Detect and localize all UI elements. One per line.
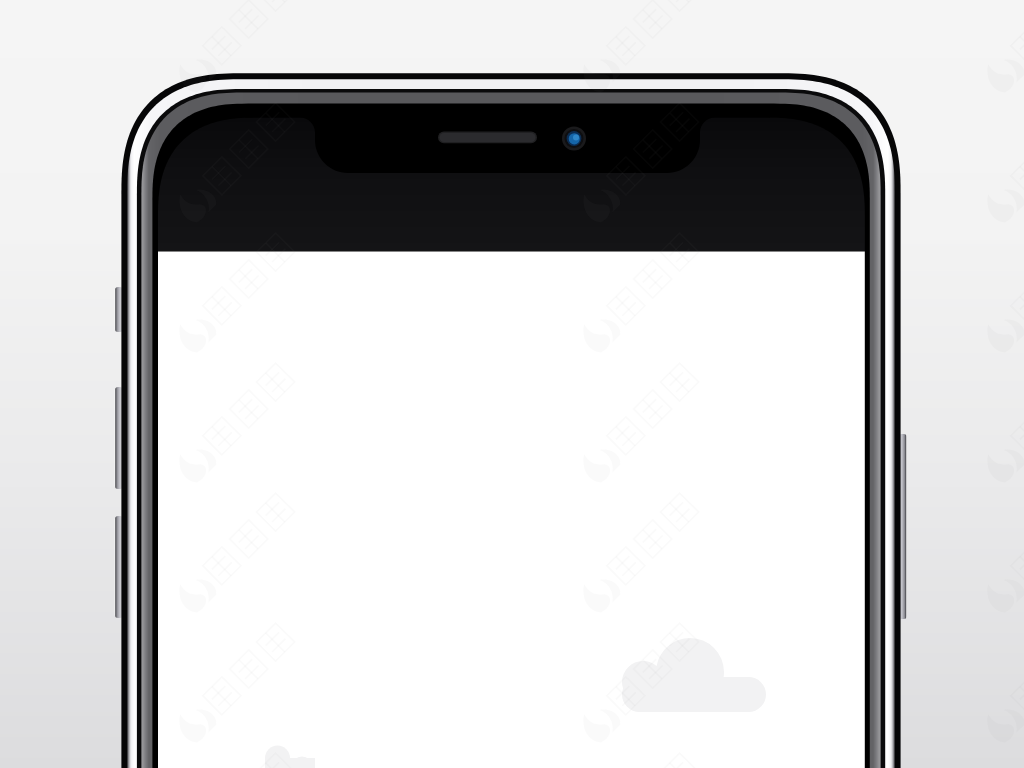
button [0,0,1024,768]
